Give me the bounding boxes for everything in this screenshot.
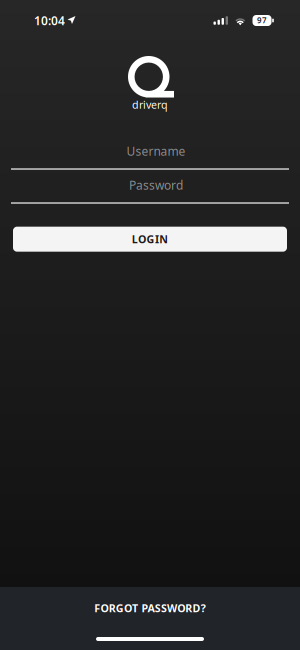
staticText: 10:04: [34, 12, 65, 28]
button[interactable]: FORGOT PASSWORD?: [0, 587, 300, 629]
staticText: FORGOT PASSWORD?: [94, 601, 206, 615]
staticText: 97: [257, 15, 267, 25]
staticText: Username: [126, 143, 185, 159]
button[interactable]: LOGIN: [13, 227, 287, 252]
staticText: LOGIN: [132, 232, 168, 246]
staticText: driverq: [132, 97, 168, 112]
staticText: Password: [129, 177, 183, 193]
